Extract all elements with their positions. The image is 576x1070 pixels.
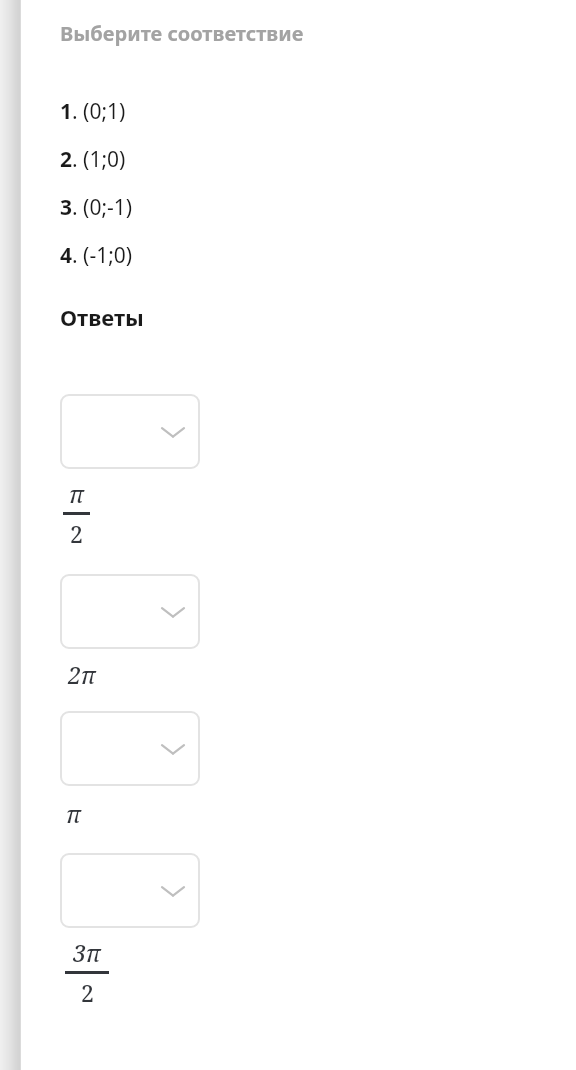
button[interactable]: Открыть список ответов	[60, 853, 200, 928]
other: Открыть список ответов	[162, 606, 184, 618]
staticText: Ответы	[60, 302, 144, 332]
staticText: 2	[70, 518, 83, 549]
staticText: 4. (-1;0)	[60, 241, 133, 270]
other: Открыть список ответов	[162, 426, 184, 438]
staticText: 3. (0;-1)	[60, 193, 133, 222]
staticText: 2. (1;0)	[60, 145, 126, 174]
staticText: π	[69, 478, 84, 509]
other: Открыть список ответов	[162, 743, 184, 755]
staticText: Выберите соответствие	[60, 20, 304, 47]
staticText: 3π	[73, 937, 101, 968]
button[interactable]: Открыть список ответов	[60, 394, 200, 469]
staticText: 2	[81, 977, 94, 1008]
other: Открыть список ответов	[162, 885, 184, 897]
staticText: π	[66, 798, 81, 829]
button[interactable]: Открыть список ответов	[60, 711, 200, 786]
button[interactable]: Открыть список ответов	[60, 574, 200, 649]
staticText: 2π	[68, 659, 96, 690]
staticText: 1. (0;1)	[60, 97, 126, 126]
